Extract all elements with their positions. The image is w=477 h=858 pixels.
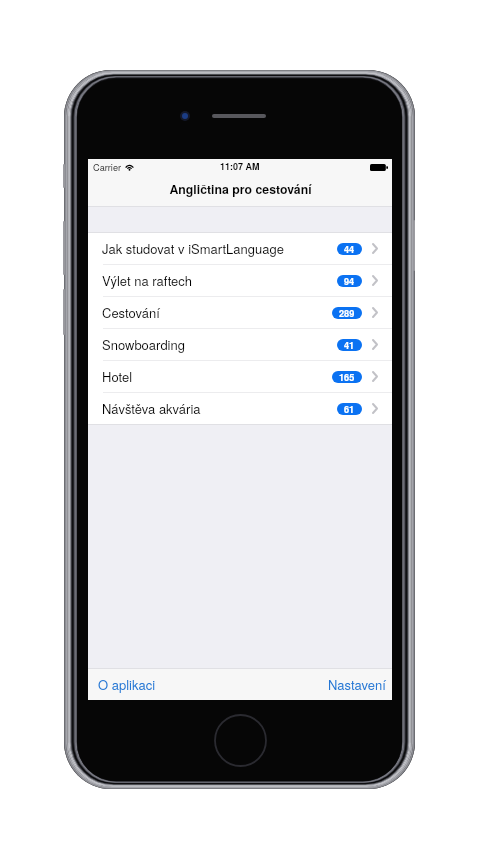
staticText: 94: [344, 275, 355, 287]
staticText: 44: [344, 243, 355, 255]
staticText: Návštěva akvária: [102, 399, 201, 418]
staticText: Jak studovat v iSmartLanguage: [102, 239, 284, 258]
staticText: 165: [339, 371, 355, 383]
staticText: 61: [344, 403, 355, 415]
staticText: Angličtina pro cestování: [169, 180, 312, 198]
staticText: O aplikaci: [98, 675, 156, 694]
staticText: Snowboarding: [102, 335, 185, 354]
button[interactable]: Návštěva akvária: [88, 393, 392, 425]
staticText: 289: [339, 307, 355, 319]
button[interactable]: Cestování: [88, 297, 392, 329]
button[interactable]: Hotel: [88, 361, 392, 393]
staticText: Nastavení: [328, 675, 386, 694]
button[interactable]: Nastavení: [328, 675, 386, 694]
staticText: 41: [344, 339, 355, 351]
staticText: Carrier: [93, 160, 122, 173]
staticText: Výlet na raftech: [102, 271, 193, 290]
staticText: Cestování: [102, 303, 160, 322]
button[interactable]: Snowboarding: [88, 329, 392, 361]
staticText: Hotel: [102, 367, 133, 386]
button[interactable]: O aplikaci: [98, 675, 156, 694]
button[interactable]: Jak studovat v iSmartLanguage: [88, 233, 392, 265]
staticText: 11:07 AM: [220, 160, 260, 173]
button[interactable]: Výlet na raftech: [88, 265, 392, 297]
